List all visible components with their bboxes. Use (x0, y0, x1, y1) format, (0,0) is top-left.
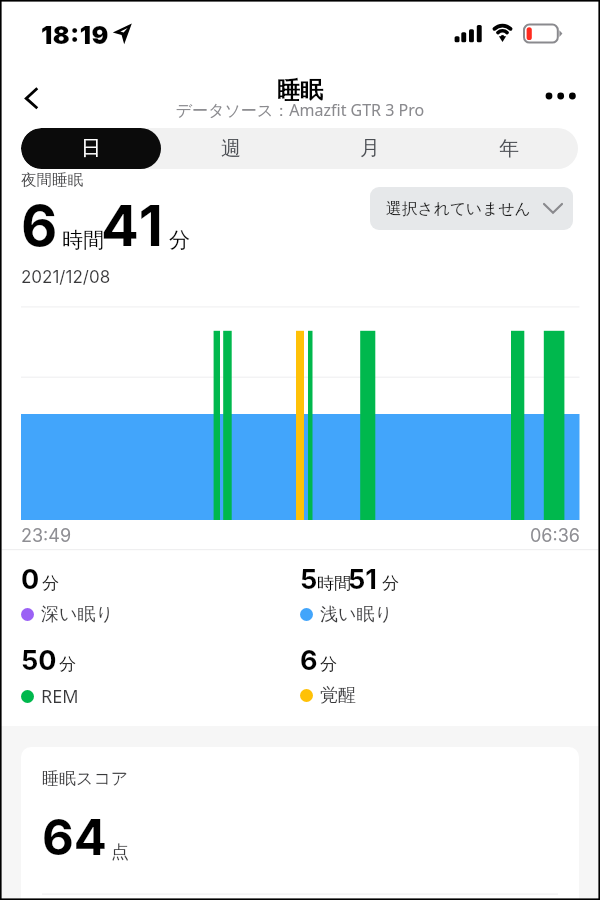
button[interactable]: 6 (300, 644, 550, 707)
staticText: 分 (169, 227, 190, 253)
staticText: 41 (101, 192, 165, 260)
staticText: 月 (360, 136, 380, 161)
button[interactable]: 年 (439, 128, 578, 169)
staticText: 時間 (62, 227, 104, 253)
staticText: 分 (320, 654, 337, 675)
staticText: 点 (111, 841, 129, 864)
staticText: 5 (300, 563, 318, 596)
staticText: REM (41, 684, 79, 709)
button[interactable]: 50 (21, 644, 271, 709)
staticText: 0 (21, 563, 40, 596)
button[interactable]: 日 (21, 128, 161, 169)
button[interactable]: 選択されていません (370, 187, 573, 230)
button[interactable]: 睡眠スコア (21, 747, 579, 900)
staticText: 23:49 (21, 525, 72, 547)
staticText: 6 (300, 644, 318, 677)
staticText: 年 (499, 136, 519, 161)
button[interactable]: 週 (161, 128, 300, 169)
staticText: 6 (21, 192, 58, 260)
staticText: 18:19 (41, 20, 109, 50)
button[interactable]: 5 (300, 563, 550, 626)
staticText: 51 (348, 563, 377, 596)
staticText: 深い眠り (41, 603, 114, 626)
staticText: 選択されていません (386, 199, 531, 219)
staticText: 分 (42, 573, 59, 594)
staticText: 64 (42, 808, 107, 867)
button[interactable]: Back (12, 76, 56, 120)
staticText: 50 (21, 644, 57, 677)
staticText: 覚醒 (320, 684, 356, 707)
staticText: データソース：Amazfit GTR 3 Pro (0, 99, 600, 121)
staticText: 2021/12/08 (21, 267, 111, 288)
staticText: 睡眠 (0, 76, 600, 105)
button[interactable]: 月 (300, 128, 439, 169)
staticText: 分 (59, 654, 76, 675)
button[interactable]: 0 (21, 563, 271, 626)
staticText: 日 (81, 136, 101, 161)
staticText: 分 (382, 573, 399, 594)
staticText: 夜間睡眠 (21, 170, 83, 190)
staticText: 浅い眠り (320, 603, 393, 626)
button[interactable]: More options (546, 78, 588, 120)
staticText: 週 (221, 136, 241, 161)
staticText: 睡眠スコア (42, 768, 129, 789)
staticText: 06:36 (530, 525, 580, 547)
staticText: 時間 (317, 573, 351, 594)
